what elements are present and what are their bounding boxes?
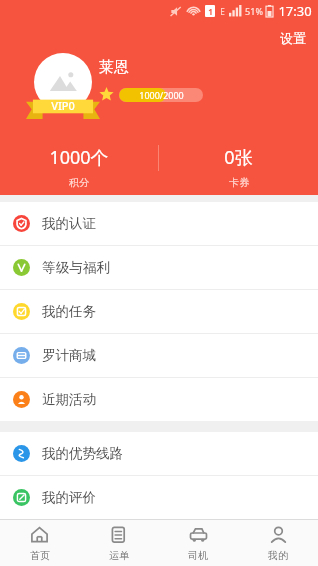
staticText: 1000/2000 [139, 89, 184, 101]
staticText: 51% [245, 5, 263, 17]
staticText: 我的优势线路 [42, 445, 123, 462]
staticText: 司机 [188, 549, 208, 562]
button[interactable]: 等级与福利 [0, 246, 318, 289]
button[interactable]: 我的评价 [0, 476, 318, 519]
staticText: 1 [208, 6, 213, 17]
staticText: VIP0 [51, 98, 75, 113]
staticText: 设置 [280, 30, 306, 46]
staticText: 我的任务 [42, 303, 96, 320]
button[interactable]: 近期活动 [0, 378, 318, 421]
button[interactable]: 罗计商城 [0, 334, 318, 377]
staticText: 运单 [109, 549, 129, 562]
staticText: 1000个 [49, 145, 109, 170]
staticText: 卡券 [229, 176, 249, 189]
button[interactable]: 我的 [238, 520, 318, 566]
staticText: 0张 [224, 145, 253, 170]
button[interactable]: Avatar [34, 53, 92, 111]
staticText: 我的认证 [42, 215, 96, 232]
button[interactable]: 我的认证 [0, 202, 318, 245]
button[interactable]: 运单 [79, 520, 158, 566]
staticText: 我的评价 [42, 489, 96, 506]
button[interactable]: 首页 [0, 520, 79, 566]
button[interactable]: 我的优势线路 [0, 432, 318, 475]
button[interactable]: 我的任务 [0, 290, 318, 333]
staticText: 等级与福利 [42, 259, 110, 276]
button[interactable]: 1000个 [0, 145, 158, 189]
staticText: 罗计商城 [42, 347, 96, 364]
button[interactable]: 设置 [268, 24, 318, 52]
staticText: 莱恩 [99, 58, 129, 77]
staticText: 我的 [268, 549, 288, 562]
button[interactable]: 司机 [158, 520, 238, 566]
staticText: 首页 [30, 549, 50, 562]
staticText: 17:30 [278, 2, 312, 20]
staticText: 近期活动 [42, 391, 96, 408]
staticText: E [220, 6, 225, 17]
staticText: 积分 [69, 176, 89, 189]
button[interactable]: 0张 [159, 145, 318, 189]
